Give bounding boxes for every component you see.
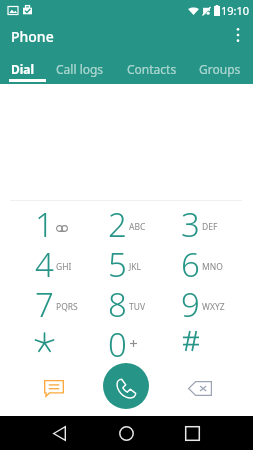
button[interactable]: 9 xyxy=(154,282,227,322)
button[interactable]: Contacts xyxy=(114,54,190,84)
button[interactable]: Send message xyxy=(40,374,68,402)
staticText: 2 xyxy=(108,202,127,242)
staticText: Dial xyxy=(11,61,35,77)
staticText: 8 xyxy=(108,282,127,322)
button[interactable]: Call logs xyxy=(45,54,114,84)
button[interactable]: Backspace xyxy=(185,373,215,403)
button[interactable]: 5 xyxy=(81,242,154,282)
button[interactable]: 0 xyxy=(81,322,154,362)
staticText: 3 xyxy=(181,202,200,242)
button[interactable]: Dial xyxy=(0,54,45,84)
button[interactable]: 7 xyxy=(8,282,81,322)
button[interactable]: Call xyxy=(103,363,149,409)
button[interactable]: 2 xyxy=(81,202,154,242)
button[interactable]: 3 xyxy=(154,202,227,242)
button[interactable]: Recents xyxy=(177,418,207,448)
staticText: 9 xyxy=(181,282,200,322)
button[interactable]: Groups xyxy=(188,54,251,84)
button[interactable]: Home xyxy=(111,418,141,448)
staticText: 7 xyxy=(35,282,54,322)
staticText: Call logs xyxy=(56,61,104,77)
button[interactable]: 8 xyxy=(81,282,154,322)
button[interactable] xyxy=(154,322,227,362)
staticText: 1 xyxy=(35,202,54,242)
staticText: Phone xyxy=(11,27,54,46)
staticText: 5 xyxy=(108,242,127,282)
staticText: WXYZ xyxy=(202,301,225,313)
staticText: PQRS xyxy=(56,301,78,313)
staticText: GHI xyxy=(56,261,72,273)
staticText: DEF xyxy=(202,221,218,233)
button[interactable]: More options xyxy=(222,19,253,51)
staticText: Contacts xyxy=(127,61,177,77)
button[interactable]: 1 xyxy=(8,202,81,242)
staticText: ABC xyxy=(129,221,146,233)
button[interactable]: 4 xyxy=(8,242,81,282)
staticText: 6 xyxy=(181,242,200,282)
button[interactable]: 6 xyxy=(154,242,227,282)
staticText: Groups xyxy=(199,61,241,77)
staticText: 0 xyxy=(108,322,127,362)
staticText: 4 xyxy=(35,242,54,282)
staticText: 19:10 xyxy=(221,3,250,18)
staticText: TUV xyxy=(129,301,146,313)
staticText: JKL xyxy=(129,261,142,273)
staticText: MNO xyxy=(202,261,223,273)
button[interactable] xyxy=(8,322,81,362)
button[interactable]: Back xyxy=(44,418,74,448)
